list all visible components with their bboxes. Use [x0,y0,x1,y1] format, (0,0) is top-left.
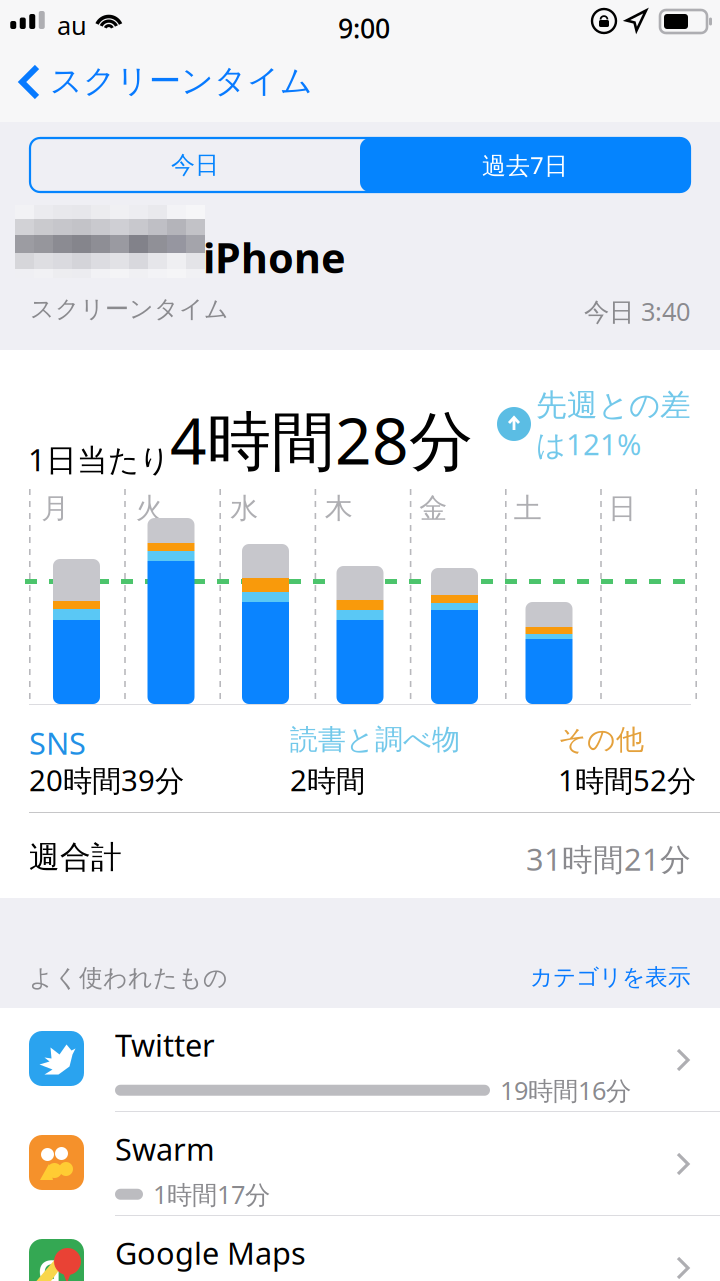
staticText: SNS [29,722,86,764]
staticText: 1日当たり [28,438,170,480]
button[interactable]: 過去7日 [360,138,690,192]
staticText: Twitter [115,1024,215,1066]
staticText: 1時間52分 [558,760,696,800]
staticText: 今日 [171,150,219,180]
staticText: スクリーンタイム [30,294,229,324]
button[interactable]: Twitter [0,1008,720,1112]
staticText: 週合計 [29,838,122,877]
staticText: 今日 3:40 [584,294,690,328]
staticText: G [38,1249,61,1281]
button[interactable]: カテゴリを表示 [0,963,720,1281]
staticText: 水 [230,491,258,526]
staticText: 木 [325,491,353,526]
staticText: Swarm [115,1128,215,1170]
staticText: よく使われたもの [29,963,228,993]
staticText: 月 [41,491,69,526]
staticText: 1時間17分 [153,1177,270,1211]
button[interactable]: G [0,1216,720,1281]
staticText: 土 [514,491,542,526]
staticText: 31時間21分 [526,838,691,880]
staticText: 20時間39分 [29,760,184,800]
staticText: 金 [419,491,447,526]
staticText: 日 [608,491,636,526]
staticText: は121% [536,424,641,464]
button[interactable]: Swarm [0,1112,720,1216]
staticText: 19時間16分 [500,1073,631,1107]
staticText: 火 [136,491,164,526]
staticText: 先週との差 [536,386,691,425]
staticText: その他 [558,722,644,757]
staticText: 9:00 [338,10,390,46]
staticText: 2時間 [290,760,365,800]
staticText: スクリーンタイム [50,61,313,101]
staticText: iPhone [203,229,346,285]
staticText: カテゴリを表示 [530,963,691,992]
button[interactable]: 今日 [30,138,360,192]
staticText: 読書と調べ物 [290,722,460,757]
button[interactable]: スクリーンタイム [0,44,720,122]
staticText: 4時間28分 [170,396,473,483]
staticText: au [57,8,87,42]
staticText: Google Maps [115,1232,306,1274]
staticText: 過去7日 [482,149,568,181]
